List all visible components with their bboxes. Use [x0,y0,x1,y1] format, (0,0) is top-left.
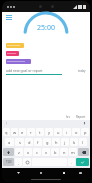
button[interactable]: Voice input [83,122,86,125]
staticText: h [55,140,58,145]
button[interactable] [2,57,90,65]
staticText: d [28,140,31,145]
staticText: today [78,69,86,73]
staticText: m [71,150,75,155]
staticText: add new goal or report [6,68,43,73]
button[interactable]: g [43,138,51,146]
button[interactable]: h [52,138,60,146]
staticText: , [18,160,19,165]
staticText: n [63,150,66,155]
button[interactable]: x [24,148,32,156]
button[interactable]: Home [37,169,45,177]
button[interactable]: a [5,138,14,146]
staticText: j [64,140,66,145]
button[interactable]: n [60,148,68,156]
staticText: t [39,130,41,135]
staticText: q [5,130,8,135]
button[interactable]: q [3,128,10,136]
button[interactable]: y [45,128,53,136]
button[interactable]: d [25,138,33,146]
button[interactable]: l [79,138,87,146]
staticText: i [66,130,68,135]
button[interactable] [2,41,90,49]
button[interactable]: w [11,128,18,136]
staticText: f [37,140,39,145]
button[interactable]: add new goal or report [6,68,86,75]
button[interactable]: v [42,148,50,156]
staticText: g [46,140,49,145]
button[interactable]: i [63,128,71,136]
staticText: p [84,130,87,135]
staticText: a [8,140,11,145]
staticText: w [13,130,17,135]
button[interactable]: Hide keyboard [76,169,84,177]
button[interactable]: f [34,138,42,146]
button[interactable]: p [81,128,89,136]
button[interactable]: 25:00 [24,12,68,39]
staticText: v [45,150,48,155]
button[interactable]: e [19,128,26,136]
button[interactable]: Enter [76,158,89,166]
button[interactable]: k [70,138,78,146]
staticText: o [75,130,78,135]
button[interactable]: z [15,148,23,156]
button[interactable]: . [68,158,75,166]
button[interactable]: hrs [66,115,70,119]
staticText: c [36,150,38,155]
staticText: b [54,150,57,155]
button[interactable]: Recent apps [60,169,68,177]
button[interactable]: c [33,148,41,156]
staticText: ?123 [6,160,12,164]
staticText: u [57,130,60,135]
button[interactable]: Back [14,169,22,177]
staticText: . [71,160,72,165]
staticText: s [19,140,21,145]
button[interactable]: s [15,138,24,146]
button[interactable]: j [61,138,69,146]
staticText: l [82,140,84,145]
staticText: 25:00 [37,23,55,33]
staticText: ! [6,122,7,126]
button[interactable]: Shift [3,148,14,156]
button[interactable] [2,49,90,57]
button[interactable]: u [54,128,62,136]
button[interactable]: ?123 [3,158,14,166]
button[interactable]: t [36,128,44,136]
button[interactable]: m [69,148,77,156]
staticText: y [48,130,51,135]
button[interactable]: , [15,158,22,166]
button[interactable]: r [27,128,35,136]
button[interactable]: b [51,148,59,156]
button[interactable]: Emoji [23,158,31,166]
button[interactable]: Report [76,115,86,119]
staticText: e [21,130,24,135]
staticText: k [73,140,76,145]
button[interactable]: Backspace [78,148,89,156]
staticText: z [18,150,20,155]
staticText: x [27,150,30,155]
button[interactable]: Menu [6,15,12,20]
staticText: r [30,130,32,135]
button[interactable]: o [72,128,80,136]
